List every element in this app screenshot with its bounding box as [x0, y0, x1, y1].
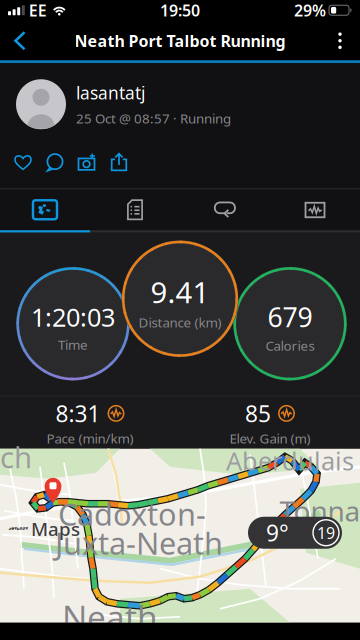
button[interactable]: Charts: [270, 189, 360, 230]
button[interactable]: Like: [7, 147, 39, 177]
staticText: 25 Oct @ 08:57 · Running: [76, 109, 231, 127]
staticText: 9°: [266, 518, 289, 548]
staticText: Neath: [62, 595, 158, 639]
staticText: 1:20:03: [31, 300, 115, 334]
button[interactable]: Add photo: [71, 147, 103, 177]
button[interactable]: Details: [90, 189, 180, 230]
staticText: 29%: [294, 0, 326, 21]
staticText: Pace (min/km): [46, 429, 133, 447]
staticText: 8:31: [55, 398, 100, 428]
staticText: Neath Port Talbot Running: [74, 30, 285, 51]
staticText: Time: [58, 336, 88, 353]
staticText: 19: [317, 522, 335, 543]
staticText: Maps: [31, 516, 80, 541]
button[interactable]: Back: [0, 22, 40, 60]
staticText: Distance (km): [138, 313, 221, 331]
button[interactable]: Summary: [0, 189, 90, 230]
staticText: Tonna: [279, 492, 360, 529]
staticText: Elev. Gain (m): [229, 429, 310, 447]
staticText: 85: [245, 398, 271, 428]
button[interactable]: Comment: [39, 147, 71, 177]
staticText: Cadoxton-: [58, 493, 206, 534]
staticText: lasantatj: [76, 81, 145, 104]
staticText: 9.41: [150, 272, 209, 311]
button[interactable]: Laps: [180, 189, 270, 230]
staticText: Juxta-Neath: [55, 522, 223, 563]
staticText: Aberdulais: [226, 444, 354, 477]
staticText: 679: [267, 299, 312, 335]
staticText: 19:50: [160, 0, 200, 21]
staticText: : [8, 519, 29, 538]
button[interactable]: Share: [103, 147, 135, 177]
staticText: Calories: [265, 337, 314, 354]
button[interactable]: More options: [320, 22, 360, 60]
staticText: EE: [29, 0, 47, 21]
staticText: ach: [0, 437, 32, 476]
